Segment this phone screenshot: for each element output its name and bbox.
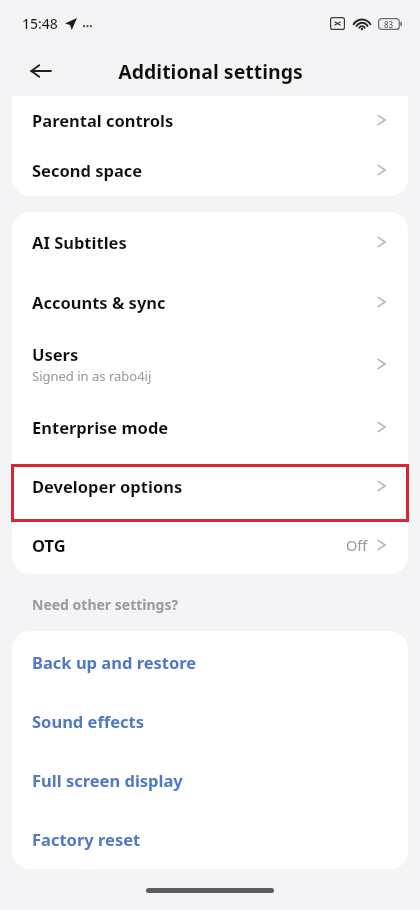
staticText: 83 — [384, 19, 394, 30]
staticText: Signed in as rabo4ij — [32, 367, 152, 385]
staticText: Full screen display — [32, 769, 183, 791]
staticText: Parental controls — [32, 109, 174, 131]
staticText: Factory reset — [32, 828, 141, 850]
button[interactable]: Factory reset — [12, 809, 408, 868]
staticText: Enterprise mode — [32, 416, 169, 438]
staticText: 15:48 — [22, 14, 58, 33]
button[interactable]: OTG — [12, 515, 408, 574]
button[interactable]: Accounts & sync — [12, 272, 408, 331]
staticText: Second space — [32, 159, 143, 181]
button[interactable]: Full screen display — [12, 750, 408, 809]
staticText: Back up and restore — [32, 651, 197, 673]
button[interactable]: Sound effects — [12, 691, 408, 750]
button[interactable]: Developer options — [12, 456, 408, 515]
button[interactable]: Second space — [12, 144, 408, 196]
staticText: Sound effects — [32, 710, 144, 732]
staticText: Users — [32, 343, 79, 365]
button[interactable]: Enterprise mode — [12, 397, 408, 456]
button[interactable]: Users — [12, 331, 408, 397]
button[interactable]: Parental controls — [12, 96, 408, 144]
staticText: Additional settings — [118, 58, 303, 85]
staticText: AI Subtitles — [32, 231, 127, 253]
button[interactable]: Back up and restore — [12, 632, 408, 691]
button[interactable]: AI Subtitles — [12, 212, 408, 272]
staticText: Need other settings? — [32, 595, 179, 614]
staticText: Accounts & sync — [32, 291, 166, 313]
staticText: Off — [346, 535, 368, 555]
staticText: Developer options — [32, 475, 183, 497]
button[interactable]: Back — [18, 48, 64, 94]
staticText: OTG — [32, 534, 66, 556]
